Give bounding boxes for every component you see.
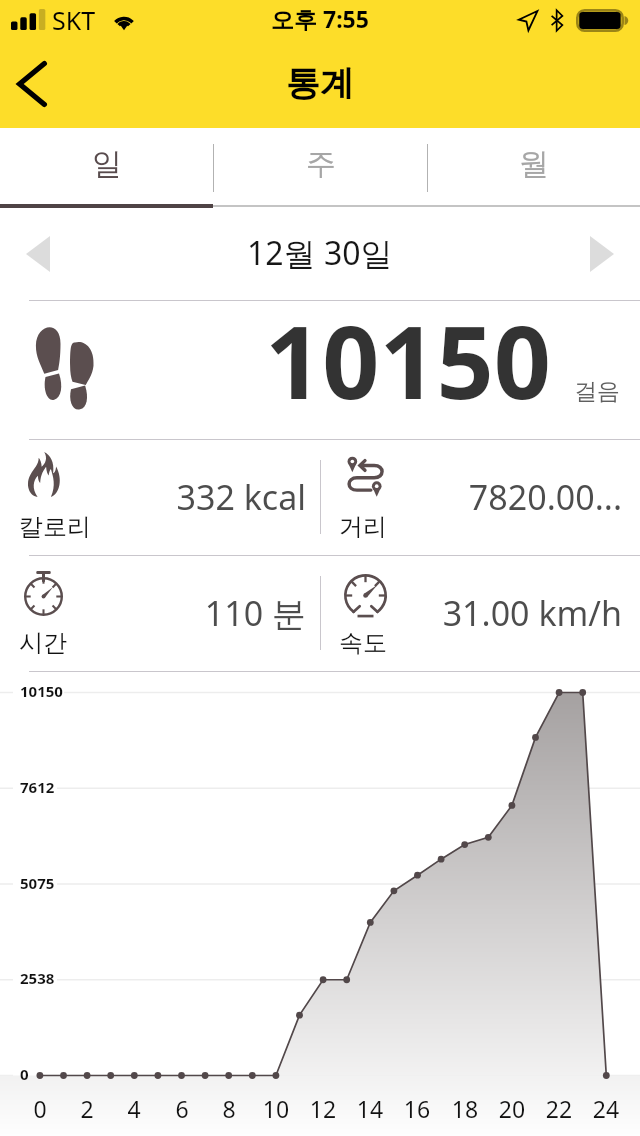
staticText: 10150 — [20, 681, 63, 701]
staticText: 10 — [256, 1093, 296, 1124]
staticText: 12 — [303, 1093, 343, 1124]
staticText: 오후 7:55 — [271, 3, 369, 34]
staticText: 31.00 km/h — [360, 590, 622, 636]
button[interactable]: Previous day — [8, 224, 68, 284]
button[interactable]: 주 — [214, 124, 427, 204]
staticText: 6 — [162, 1093, 202, 1124]
staticText: SKT — [52, 3, 96, 37]
staticText: 0 — [20, 1093, 60, 1124]
staticText: 속도 — [339, 628, 387, 658]
staticText: 칼로리 — [19, 512, 91, 542]
staticText: 걸음 — [574, 377, 620, 406]
button[interactable]: 월 — [427, 124, 640, 204]
staticText: 18 — [445, 1093, 485, 1124]
staticText: 10150 — [265, 292, 551, 428]
staticText: 332 kcal — [40, 474, 306, 520]
staticText: 거리 — [339, 512, 387, 542]
staticText: 20 — [492, 1093, 532, 1124]
staticText: 16 — [397, 1093, 437, 1124]
staticText: 110 분 — [40, 590, 306, 636]
staticText: 7820.00... — [360, 474, 622, 520]
staticText: 월 — [519, 145, 549, 183]
staticText: 2538 — [20, 968, 55, 988]
staticText: 시간 — [19, 628, 67, 658]
staticText: 14 — [350, 1093, 390, 1124]
staticText: 0 — [20, 1064, 29, 1084]
staticText: 통계 — [286, 62, 354, 105]
staticText: 24 — [586, 1093, 626, 1124]
staticText: 22 — [539, 1093, 579, 1124]
staticText: 주 — [306, 145, 336, 183]
staticText: 7612 — [20, 777, 55, 797]
staticText: 8 — [209, 1093, 249, 1124]
button[interactable]: Back — [0, 40, 64, 128]
staticText: 4 — [114, 1093, 154, 1124]
button[interactable]: Next day — [572, 224, 632, 284]
button[interactable]: 일 — [0, 124, 214, 204]
staticText: 12월 30일 — [247, 231, 393, 275]
staticText: 5075 — [20, 873, 55, 893]
staticText: 일 — [92, 145, 122, 183]
staticText: 2 — [67, 1093, 107, 1124]
